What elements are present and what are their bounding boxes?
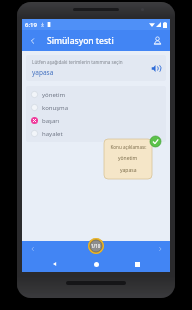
button[interactable]: Recents xyxy=(129,256,145,272)
button[interactable]: Back xyxy=(47,256,63,272)
staticText: 6:19 xyxy=(25,21,37,29)
button[interactable]: başarı xyxy=(26,114,166,127)
button[interactable]: Play audio xyxy=(149,62,161,74)
button[interactable]: hayalet xyxy=(26,127,166,140)
staticText: Lütfen aşağıdaki terimlerin tanımına seç… xyxy=(32,59,123,65)
staticText: yapasa xyxy=(32,68,54,77)
staticText: Simülasyon testi xyxy=(47,35,114,47)
button[interactable]: Home xyxy=(88,256,104,272)
staticText: Konu açıklaması: xyxy=(110,144,147,150)
staticText: hayalet xyxy=(42,130,63,138)
button[interactable]: konuşma xyxy=(26,101,166,114)
staticText: 1/10 xyxy=(91,243,101,249)
staticText: konuşma xyxy=(42,104,69,112)
button[interactable]: Back xyxy=(22,30,43,51)
button[interactable]: Next xyxy=(153,242,166,255)
button[interactable]: Question 1 of 10 xyxy=(88,238,104,253)
button[interactable]: Previous xyxy=(26,242,39,255)
staticText: yapasa xyxy=(120,167,137,174)
button[interactable]: Konu açıklaması: xyxy=(104,139,152,179)
button[interactable]: Lütfen aşağıdaki terimlerin tanımına seç… xyxy=(26,55,166,81)
staticText: başarı xyxy=(42,117,60,125)
staticText: yönetim xyxy=(118,155,138,162)
button[interactable]: Correct xyxy=(150,136,161,147)
button[interactable]: yönetim xyxy=(26,88,166,101)
staticText: yönetim xyxy=(42,91,66,99)
button[interactable]: Profile xyxy=(147,30,168,51)
